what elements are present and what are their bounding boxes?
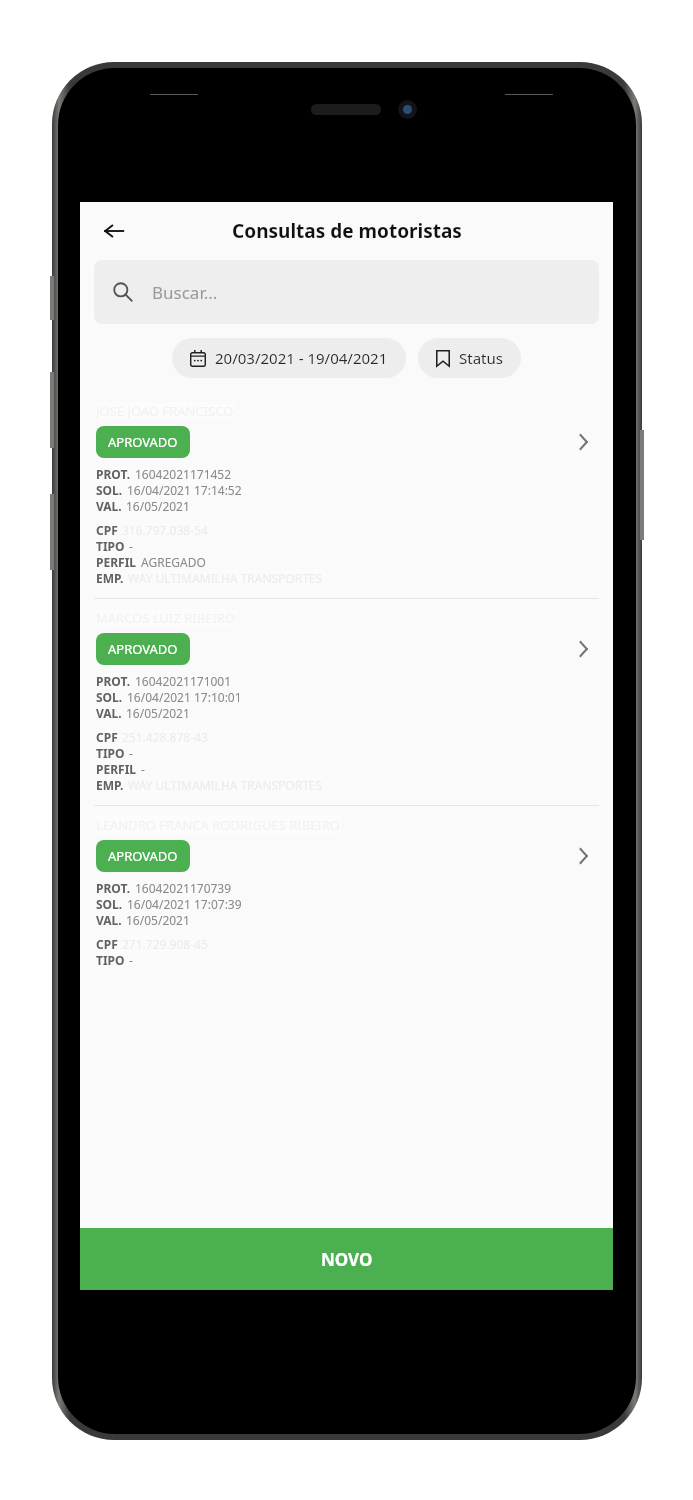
staticText: PROT. (96, 466, 131, 482)
staticText: 251.428.878-43 (122, 729, 208, 745)
staticText: TIPO (96, 952, 125, 968)
staticText: 16042021171001 (135, 673, 232, 689)
staticText: SOL. (96, 896, 123, 912)
staticText: NOVO (321, 1248, 373, 1271)
staticText: 20/03/2021 - 19/04/2021 (215, 348, 388, 368)
staticText: - (129, 538, 133, 554)
staticText: Buscar... (152, 281, 218, 304)
staticText: AGREGADO (141, 554, 206, 570)
staticText: 16/04/2021 17:07:39 (127, 896, 242, 912)
staticText: LEANDRO FRANCA RODRIGUES RIBEIRO (96, 816, 341, 834)
staticText: VAL. (96, 912, 122, 928)
staticText: 16/05/2021 (126, 498, 190, 514)
staticText: APROVADO (108, 433, 178, 451)
other: Abrir detalhes (576, 431, 591, 453)
staticText: EMP. (96, 777, 124, 793)
staticText: CPF (96, 936, 118, 952)
staticText: 16/04/2021 17:10:01 (127, 689, 242, 705)
staticText: Status (459, 348, 503, 368)
staticText: SOL. (96, 482, 123, 498)
button[interactable]: 20/03/2021 - 19/04/2021 (172, 338, 406, 378)
staticText: APROVADO (108, 640, 178, 658)
button[interactable]: Status (418, 338, 521, 378)
staticText: PROT. (96, 880, 131, 896)
staticText: 316.797.038-54 (122, 522, 208, 538)
staticText: PERFIL (96, 761, 137, 777)
button[interactable]: JOSE JOAO FRANCISCO (80, 392, 613, 598)
button[interactable]: LEANDRO FRANCA RODRIGUES RIBEIRO (80, 806, 613, 968)
staticText: - (129, 745, 133, 761)
other: Abrir detalhes (576, 638, 591, 660)
staticText: PERFIL (96, 554, 137, 570)
staticText: CPF (96, 729, 118, 745)
staticText: WAY ULTIMAMILHA TRANSPORTES (128, 570, 323, 586)
staticText: 16042021171452 (135, 466, 232, 482)
button[interactable]: NOVO (80, 1228, 613, 1290)
staticText: WAY ULTIMAMILHA TRANSPORTES (128, 777, 323, 793)
staticText: MARCOS LUIZ RIBEIRO (96, 609, 236, 627)
staticText: Consultas de motoristas (232, 218, 462, 244)
other: Abrir detalhes (576, 845, 591, 867)
staticText: 16/05/2021 (126, 705, 190, 721)
button[interactable]: MARCOS LUIZ RIBEIRO (80, 599, 613, 805)
staticText: 16/05/2021 (126, 912, 190, 928)
button[interactable]: Buscar... (94, 260, 599, 324)
staticText: APROVADO (108, 847, 178, 865)
staticText: 271.729.908-45 (122, 936, 208, 952)
staticText: CPF (96, 522, 118, 538)
staticText: VAL. (96, 705, 122, 721)
staticText: JOSE JOAO FRANCISCO (96, 402, 234, 420)
staticText: VAL. (96, 498, 122, 514)
staticText: 16042021170739 (135, 880, 232, 896)
staticText: - (141, 761, 145, 777)
button[interactable]: Voltar (94, 211, 134, 251)
staticText: SOL. (96, 689, 123, 705)
staticText: TIPO (96, 745, 125, 761)
staticText: TIPO (96, 538, 125, 554)
staticText: PROT. (96, 673, 131, 689)
staticText: EMP. (96, 570, 124, 586)
staticText: 16/04/2021 17:14:52 (127, 482, 242, 498)
staticText: - (129, 952, 133, 968)
